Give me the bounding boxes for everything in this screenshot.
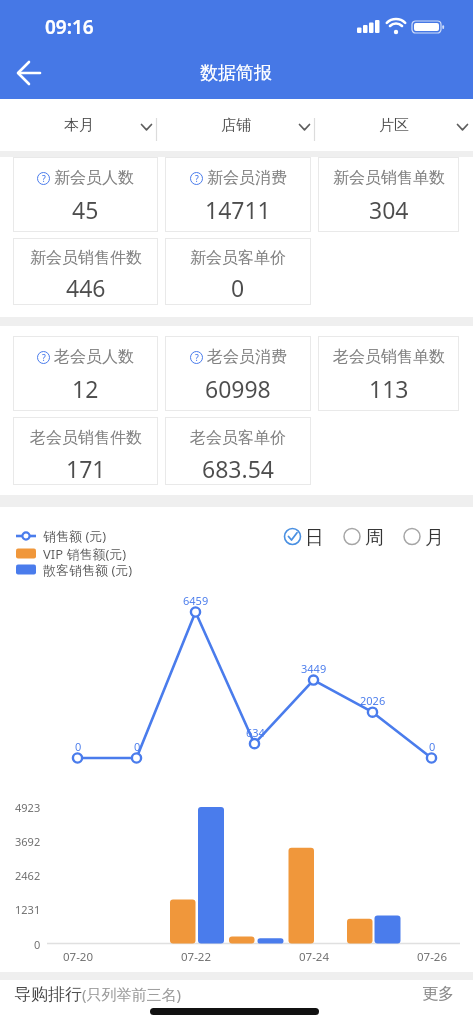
staticText: 1231: [15, 902, 41, 916]
staticText: 散客销售额 (元): [43, 561, 133, 579]
staticText: 3692: [15, 834, 41, 848]
staticText: 日: [305, 526, 324, 547]
staticText: 4923: [15, 800, 41, 814]
staticText: 新会员客单价: [190, 248, 286, 268]
staticText: 片区: [379, 116, 409, 135]
staticText: 导购排行: [14, 984, 82, 1005]
staticText: (只列举前三名): [82, 984, 182, 1004]
staticText: 2462: [15, 868, 41, 882]
button[interactable]: ?: [13, 336, 158, 411]
button[interactable]: 新会员客单价: [165, 238, 311, 305]
button[interactable]: ?: [13, 157, 158, 232]
staticText: ?: [195, 352, 199, 364]
staticText: 2026: [360, 693, 386, 707]
staticText: ?: [195, 173, 199, 185]
staticText: 销售额 (元): [43, 527, 107, 545]
staticText: 新会员消费: [207, 168, 287, 188]
staticText: 07-26: [417, 949, 448, 963]
staticText: 634: [246, 725, 265, 739]
button[interactable]: [400, 524, 452, 550]
button[interactable]: ?: [165, 336, 311, 411]
staticText: 0: [34, 937, 41, 951]
button[interactable]: [280, 524, 332, 550]
button[interactable]: 老会员客单价: [165, 417, 311, 485]
staticText: 0: [134, 739, 141, 753]
staticText: 老会员销售单数: [333, 347, 445, 367]
staticText: 171: [66, 453, 106, 484]
staticText: 12: [72, 373, 99, 404]
button[interactable]: 老会员销售单数: [318, 336, 459, 411]
button[interactable]: 老会员销售件数: [13, 417, 158, 485]
button[interactable]: 更多: [410, 980, 465, 1008]
button[interactable]: 新会员销售件数: [13, 238, 158, 305]
staticText: 07-24: [299, 949, 330, 963]
staticText: ?: [42, 352, 46, 364]
staticText: 07-20: [63, 949, 94, 963]
staticText: 304: [369, 194, 409, 225]
button[interactable]: 新会员销售单数: [318, 157, 459, 232]
staticText: 新会员销售单数: [333, 168, 445, 188]
staticText: 0: [231, 272, 245, 303]
staticText: 老会员人数: [54, 347, 134, 367]
button[interactable]: [10, 55, 48, 93]
staticText: 0: [75, 739, 82, 753]
staticText: 07-22: [181, 949, 212, 963]
staticText: VIP 销售额(元): [43, 545, 127, 563]
staticText: 本月: [64, 116, 94, 135]
staticText: 09:16: [45, 14, 94, 40]
staticText: 新会员销售件数: [30, 248, 142, 268]
staticText: 6459: [183, 593, 209, 607]
staticText: 0: [429, 739, 436, 753]
staticText: 老会员销售件数: [30, 428, 142, 448]
staticText: 14711: [205, 194, 271, 225]
staticText: 数据简报: [200, 62, 272, 85]
button[interactable]: ?: [165, 157, 311, 232]
staticText: 45: [72, 194, 99, 225]
button[interactable]: 本月: [0, 99, 157, 151]
staticText: 月: [425, 526, 444, 547]
staticText: 更多: [422, 984, 454, 1004]
staticText: 周: [365, 526, 384, 547]
staticText: 3449: [301, 661, 327, 675]
staticText: ?: [42, 173, 46, 185]
staticText: 60998: [205, 373, 271, 404]
staticText: 683.54: [202, 453, 274, 484]
button[interactable]: 店铺: [157, 99, 315, 151]
button[interactable]: 片区: [315, 99, 473, 151]
staticText: 老会员客单价: [190, 428, 286, 448]
staticText: 店铺: [221, 116, 251, 135]
button[interactable]: [340, 524, 392, 550]
staticText: 新会员人数: [54, 168, 134, 188]
staticText: 113: [369, 373, 409, 404]
staticText: 446: [66, 272, 106, 303]
staticText: 老会员消费: [207, 347, 287, 367]
